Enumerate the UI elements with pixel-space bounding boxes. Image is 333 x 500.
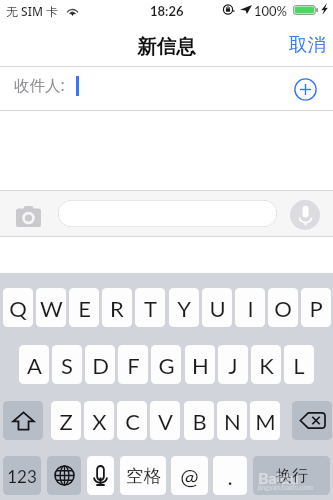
staticText: K: [259, 352, 274, 378]
button[interactable]: .: [213, 456, 247, 495]
staticText: R: [110, 295, 124, 321]
button[interactable]: J: [218, 345, 248, 384]
button[interactable]: Z: [51, 401, 81, 440]
button[interactable]: R: [102, 288, 132, 327]
staticText: A: [27, 352, 42, 378]
button[interactable]: 123: [3, 456, 41, 495]
staticText: .: [227, 463, 233, 489]
button[interactable]: F: [118, 345, 148, 384]
button[interactable]: Switch keyboard: [47, 456, 81, 495]
staticText: J: [228, 352, 238, 378]
button[interactable]: 空格: [120, 456, 166, 495]
button[interactable]: S: [52, 345, 82, 384]
button[interactable]: Shift: [3, 401, 43, 440]
staticText: I: [247, 295, 254, 321]
staticText: Baidu: [258, 468, 299, 487]
button[interactable]: L: [284, 345, 314, 384]
button[interactable]: G: [151, 345, 181, 384]
staticText: F: [127, 352, 140, 378]
button[interactable]: I: [235, 288, 265, 327]
button[interactable]: Y: [169, 288, 199, 327]
button[interactable]: @: [171, 456, 208, 495]
button[interactable]: [58, 200, 277, 227]
button[interactable]: D: [85, 345, 115, 384]
staticText: G: [158, 352, 175, 378]
staticText: D: [92, 352, 109, 378]
button[interactable]: Q: [3, 288, 33, 327]
button[interactable]: Camera: [13, 201, 43, 231]
staticText: 18:26: [150, 3, 184, 19]
button[interactable]: M: [250, 401, 280, 440]
staticText: E: [78, 295, 91, 321]
staticText: 空格: [126, 465, 161, 487]
staticText: X: [92, 408, 107, 434]
staticText: W: [40, 295, 63, 321]
button[interactable]: V: [150, 401, 180, 440]
staticText: M: [255, 408, 276, 434]
staticText: 取消: [289, 33, 326, 56]
staticText: 无 SIM 卡: [6, 3, 59, 19]
staticText: B: [192, 408, 207, 434]
button[interactable]: W: [36, 288, 66, 327]
button[interactable]: X: [84, 401, 114, 440]
button[interactable]: Add recipient: [292, 76, 319, 103]
staticText: P: [309, 295, 323, 321]
staticText: C: [125, 408, 140, 434]
staticText: @: [180, 463, 199, 489]
button[interactable]: B: [184, 401, 214, 440]
staticText: jingyan.baidu.com: [258, 483, 314, 491]
staticText: V: [158, 408, 173, 434]
button[interactable]: N: [217, 401, 247, 440]
button[interactable]: 取消: [281, 24, 333, 63]
button[interactable]: 换行: [253, 456, 330, 495]
button[interactable]: C: [117, 401, 147, 440]
button[interactable]: Record audio message: [290, 200, 320, 230]
button[interactable]: E: [69, 288, 99, 327]
staticText: 100%: [254, 3, 288, 19]
button[interactable]: Dictation: [87, 456, 114, 495]
button[interactable]: K: [251, 345, 281, 384]
staticText: N: [224, 408, 241, 434]
button[interactable]: H: [185, 345, 215, 384]
staticText: T: [144, 295, 157, 321]
staticText: L: [293, 352, 305, 378]
staticText: O: [274, 295, 292, 321]
staticText: 新信息: [137, 34, 196, 59]
button[interactable]: O: [268, 288, 298, 327]
button[interactable]: Delete: [292, 401, 332, 440]
staticText: U: [209, 295, 226, 321]
button[interactable]: U: [202, 288, 232, 327]
staticText: S: [61, 352, 73, 378]
staticText: Q: [9, 295, 27, 321]
staticText: 换行: [276, 466, 308, 486]
staticText: Y: [177, 295, 191, 321]
button[interactable]: A: [19, 345, 49, 384]
button[interactable]: T: [135, 288, 165, 327]
staticText: Z: [59, 408, 73, 434]
staticText: H: [192, 352, 209, 378]
staticText: 123: [7, 466, 37, 486]
staticText: 收件人:: [14, 74, 65, 95]
button[interactable]: P: [301, 288, 331, 327]
